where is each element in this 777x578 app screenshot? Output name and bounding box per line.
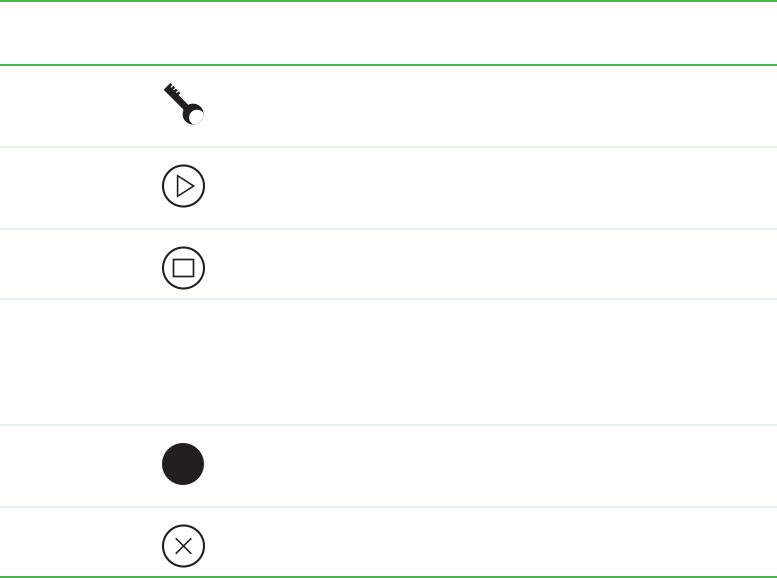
button[interactable]: Play	[0, 148, 777, 228]
button[interactable]: Cancel	[0, 508, 777, 576]
button[interactable]: Unlock	[0, 66, 777, 146]
button[interactable]: Record	[0, 426, 777, 506]
button[interactable]: Stop	[0, 230, 777, 298]
